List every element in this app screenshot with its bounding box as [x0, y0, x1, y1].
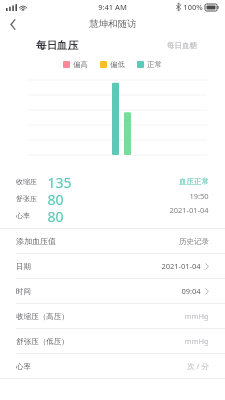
staticText: 9:41 AM	[98, 2, 127, 12]
staticText: 每日血糖	[167, 41, 197, 50]
staticText: 心率	[16, 211, 30, 220]
staticText: 偏高	[73, 60, 88, 69]
staticText: 正常	[147, 60, 162, 69]
staticText: 舒张压（低压）	[16, 337, 69, 346]
staticText: 收缩压	[16, 177, 37, 186]
button[interactable]: 舒张压（低压）	[0, 329, 225, 353]
button[interactable]: 历史记录	[179, 237, 209, 246]
staticText: 每日血压	[36, 39, 78, 52]
staticText: 时间	[16, 287, 31, 296]
staticText: 历史记录	[179, 237, 209, 246]
staticText: mmHg	[184, 311, 209, 321]
staticText: 09:04	[181, 286, 201, 296]
staticText: 135	[47, 173, 72, 190]
staticText: 舒张压	[16, 194, 37, 203]
staticText: 100%	[183, 2, 203, 12]
staticText: 2021-01-04	[169, 205, 209, 215]
staticText: 心率	[16, 362, 31, 371]
button[interactable]: 每日血糖	[167, 41, 197, 50]
button[interactable]: 心率	[0, 354, 225, 378]
staticText: 2021-01-04	[161, 261, 201, 271]
staticText: 次 / 分	[187, 361, 209, 371]
staticText: 慧坤和随访	[89, 18, 137, 30]
staticText: 80	[47, 207, 64, 224]
staticText: 添加血压值	[16, 236, 56, 246]
button[interactable]: 每日血压	[36, 39, 78, 52]
staticText: 收缩压（高压）	[16, 312, 69, 321]
staticText: 血压正常	[179, 177, 209, 186]
staticText: 偏低	[110, 60, 125, 69]
staticText: 19:50	[189, 191, 209, 201]
button[interactable]: 日期	[0, 254, 225, 278]
button[interactable]: 收缩压（高压）	[0, 304, 225, 328]
staticText: mmHg	[184, 336, 209, 346]
staticText: 80	[47, 190, 64, 207]
button[interactable]: 时间	[0, 279, 225, 303]
button[interactable]: Back	[0, 14, 26, 34]
staticText: 日期	[16, 262, 31, 271]
